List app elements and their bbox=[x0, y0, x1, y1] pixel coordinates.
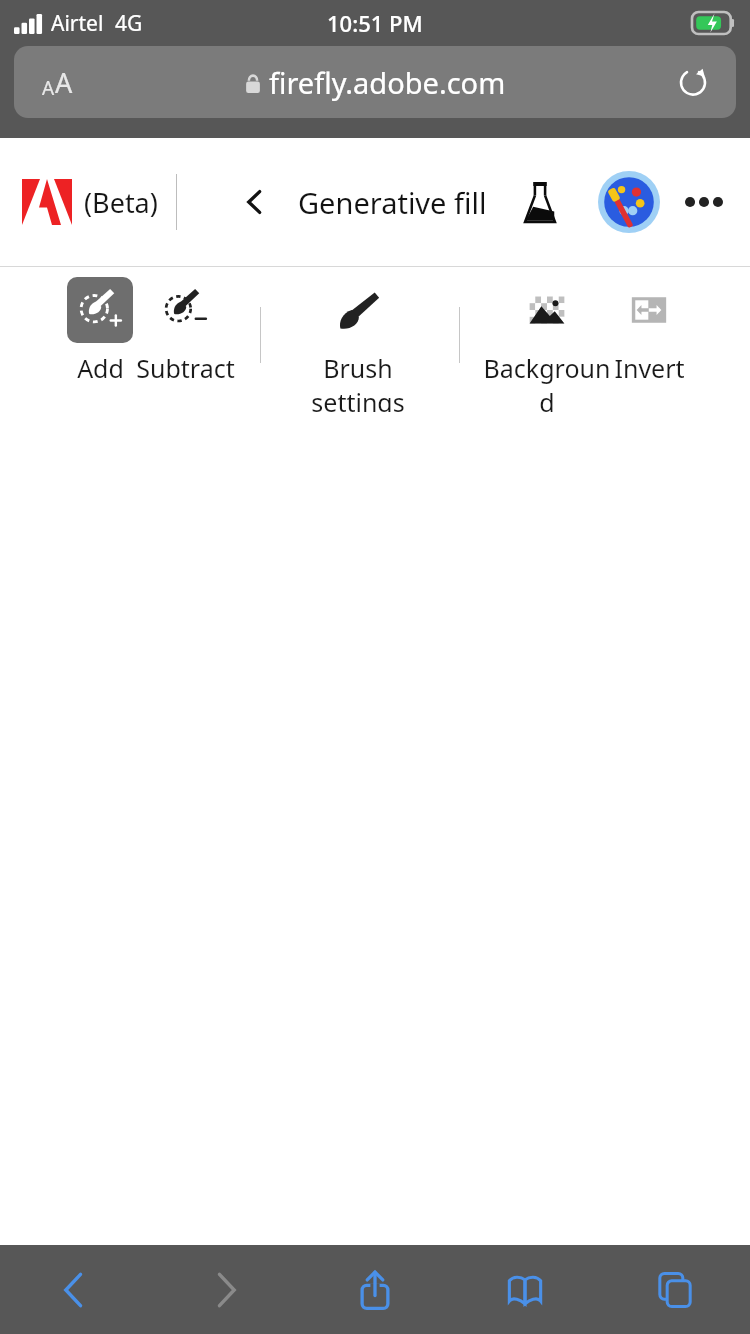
staticText: 10:51 PM bbox=[327, 8, 423, 38]
staticText: Brush settings bbox=[293, 351, 423, 412]
button[interactable]: Reload page bbox=[650, 46, 736, 118]
button[interactable]: Profile bbox=[596, 169, 662, 235]
button[interactable]: Background bbox=[482, 277, 612, 412]
staticText: firefly.adobe.com bbox=[269, 63, 506, 102]
button[interactable]: Text size options bbox=[14, 46, 736, 118]
button[interactable]: Back bbox=[0, 1245, 150, 1334]
staticText: Airtel bbox=[51, 9, 104, 38]
button[interactable]: Forward bbox=[150, 1245, 300, 1334]
staticText: Invert bbox=[614, 351, 685, 385]
button[interactable]: Text size options bbox=[14, 46, 100, 118]
button[interactable]: Add to selection bbox=[35, 277, 165, 385]
button[interactable]: Subtract from selection bbox=[120, 277, 250, 385]
button[interactable]: Brush settings bbox=[293, 277, 423, 412]
button[interactable]: Share bbox=[300, 1245, 450, 1334]
button[interactable]: Adobe Firefly home bbox=[22, 179, 158, 225]
button[interactable]: Tabs bbox=[600, 1245, 750, 1334]
button[interactable]: More options bbox=[676, 174, 732, 230]
staticText: A bbox=[55, 64, 73, 101]
staticText: Generative fill bbox=[298, 183, 487, 222]
button[interactable]: Invert selection bbox=[584, 277, 714, 385]
button[interactable]: Beta features bbox=[512, 174, 568, 230]
staticText: Add bbox=[77, 351, 124, 385]
button[interactable]: Bookmarks bbox=[450, 1245, 600, 1334]
staticText: 4G bbox=[115, 9, 143, 38]
staticText: Subtract bbox=[136, 351, 235, 385]
staticText: (Beta) bbox=[84, 184, 158, 221]
button[interactable]: Back bbox=[228, 175, 282, 229]
staticText: A bbox=[42, 75, 55, 101]
staticText: Background bbox=[482, 351, 612, 412]
